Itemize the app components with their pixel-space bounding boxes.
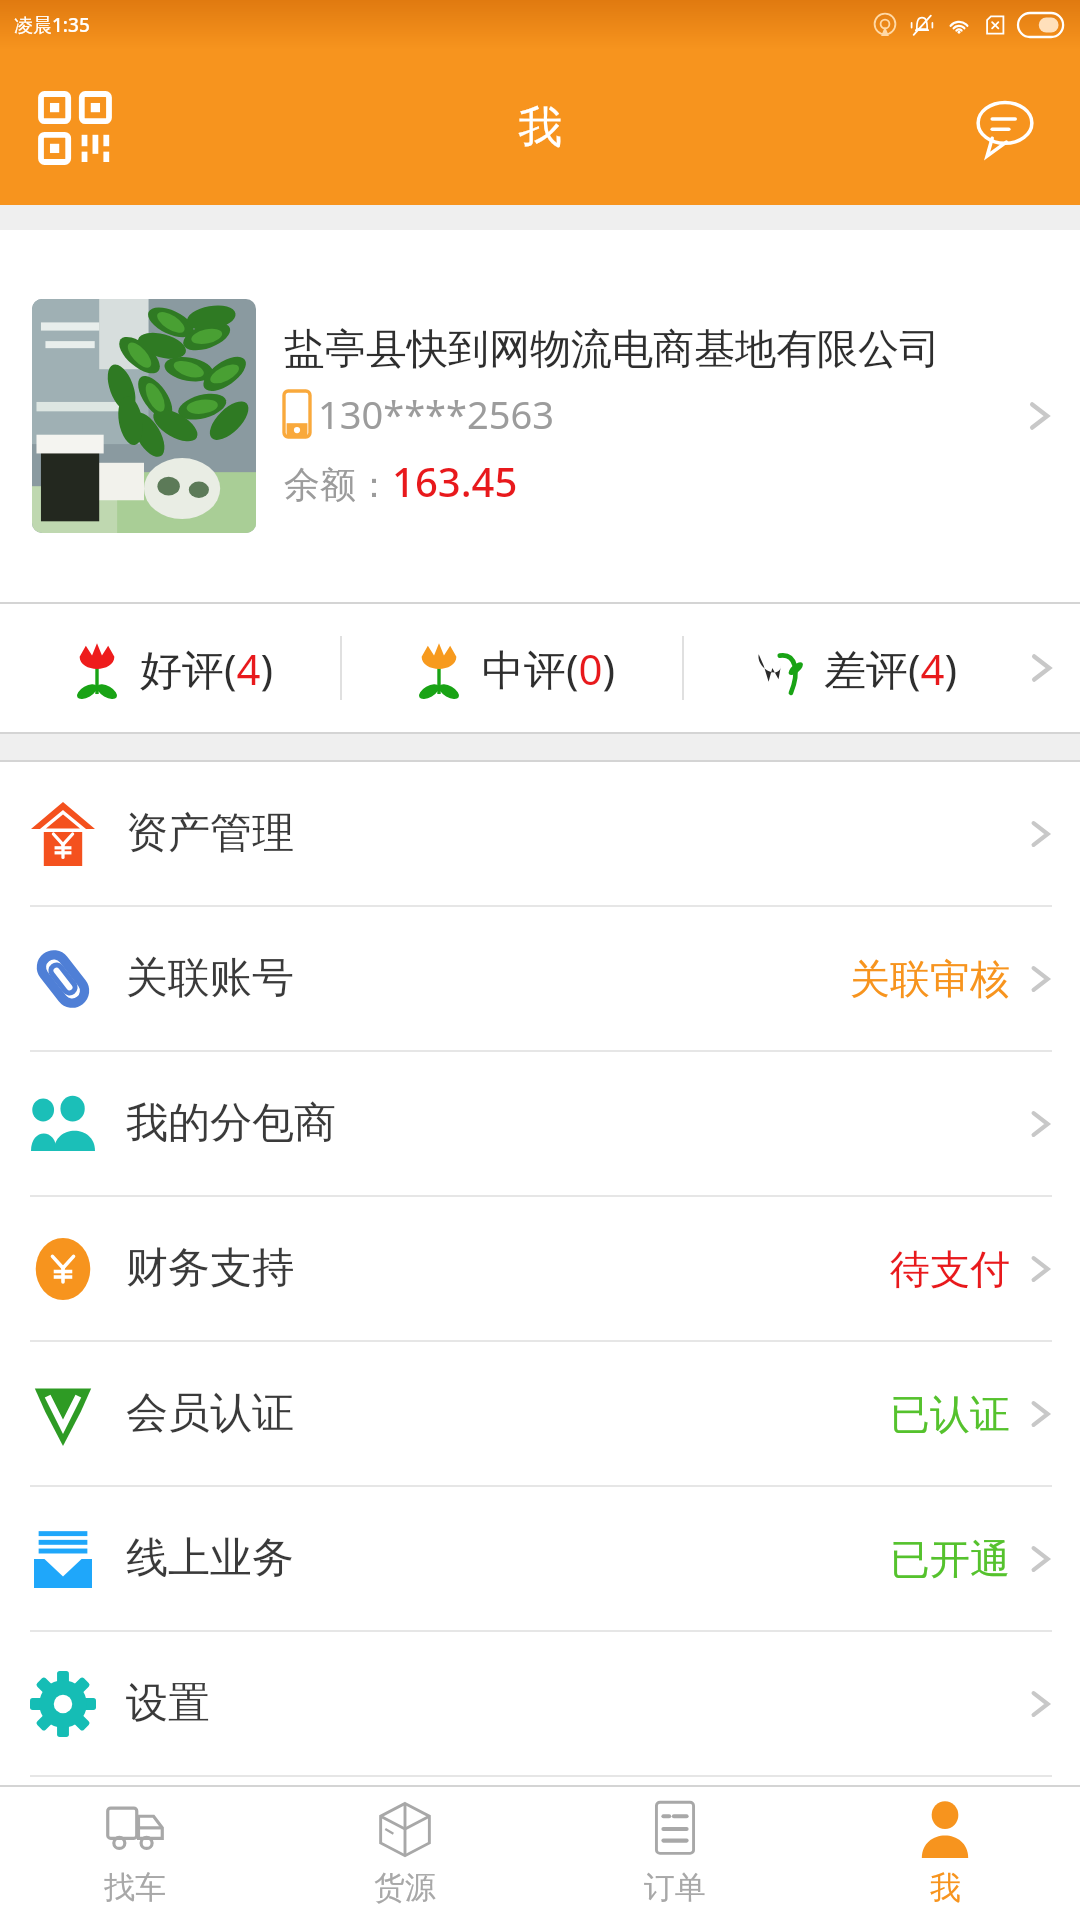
button[interactable]: 盐亭县快到网物流电商基地有限公司	[0, 230, 1080, 602]
staticText: 130****2563	[318, 388, 554, 440]
staticText: 设置	[126, 1677, 210, 1730]
button[interactable]: 设置	[0, 1632, 1080, 1775]
staticText: 资产管理	[126, 807, 294, 860]
staticText: 我	[518, 100, 562, 155]
button[interactable]: 扫一扫	[30, 83, 120, 173]
staticText: 财务支持	[126, 1242, 294, 1295]
button[interactable]: 线上业务	[0, 1487, 1080, 1630]
staticText: 货源	[374, 1868, 436, 1907]
staticText: 已认证	[890, 1389, 1010, 1439]
staticText: 线上业务	[126, 1532, 294, 1585]
staticText: 差评(4)	[824, 640, 958, 697]
staticText: 关联账号	[126, 952, 294, 1005]
staticText: 中评(0)	[482, 640, 616, 697]
staticText: 已开通	[890, 1534, 1010, 1584]
staticText: 凌晨1:35	[14, 12, 90, 38]
staticText: 好评(4)	[140, 640, 274, 697]
button[interactable]: 我的分包商	[0, 1052, 1080, 1195]
button[interactable]: 好评(4)	[0, 604, 1080, 732]
button[interactable]: 会员认证	[0, 1342, 1080, 1485]
staticText: 订单	[644, 1868, 706, 1907]
button[interactable]: 关联账号	[0, 907, 1080, 1050]
button[interactable]: 货源	[270, 1787, 540, 1920]
button[interactable]: 财务支持	[0, 1197, 1080, 1340]
staticText: 关联审核	[850, 954, 1010, 1004]
staticText: 盐亭县快到网物流电商基地有限公司	[284, 324, 940, 376]
button[interactable]: 我	[810, 1787, 1080, 1920]
staticText: 我	[930, 1868, 961, 1907]
button[interactable]: 资产管理	[0, 762, 1080, 905]
staticText: 找车	[104, 1868, 166, 1907]
button[interactable]: 找车	[0, 1787, 270, 1920]
button[interactable]: 订单	[540, 1787, 810, 1920]
staticText: 我的分包商	[126, 1097, 336, 1150]
staticText: 余额：163.45	[284, 454, 518, 508]
staticText: 会员认证	[126, 1387, 294, 1440]
staticText: 待支付	[890, 1244, 1010, 1294]
button[interactable]: 消息	[960, 83, 1050, 173]
